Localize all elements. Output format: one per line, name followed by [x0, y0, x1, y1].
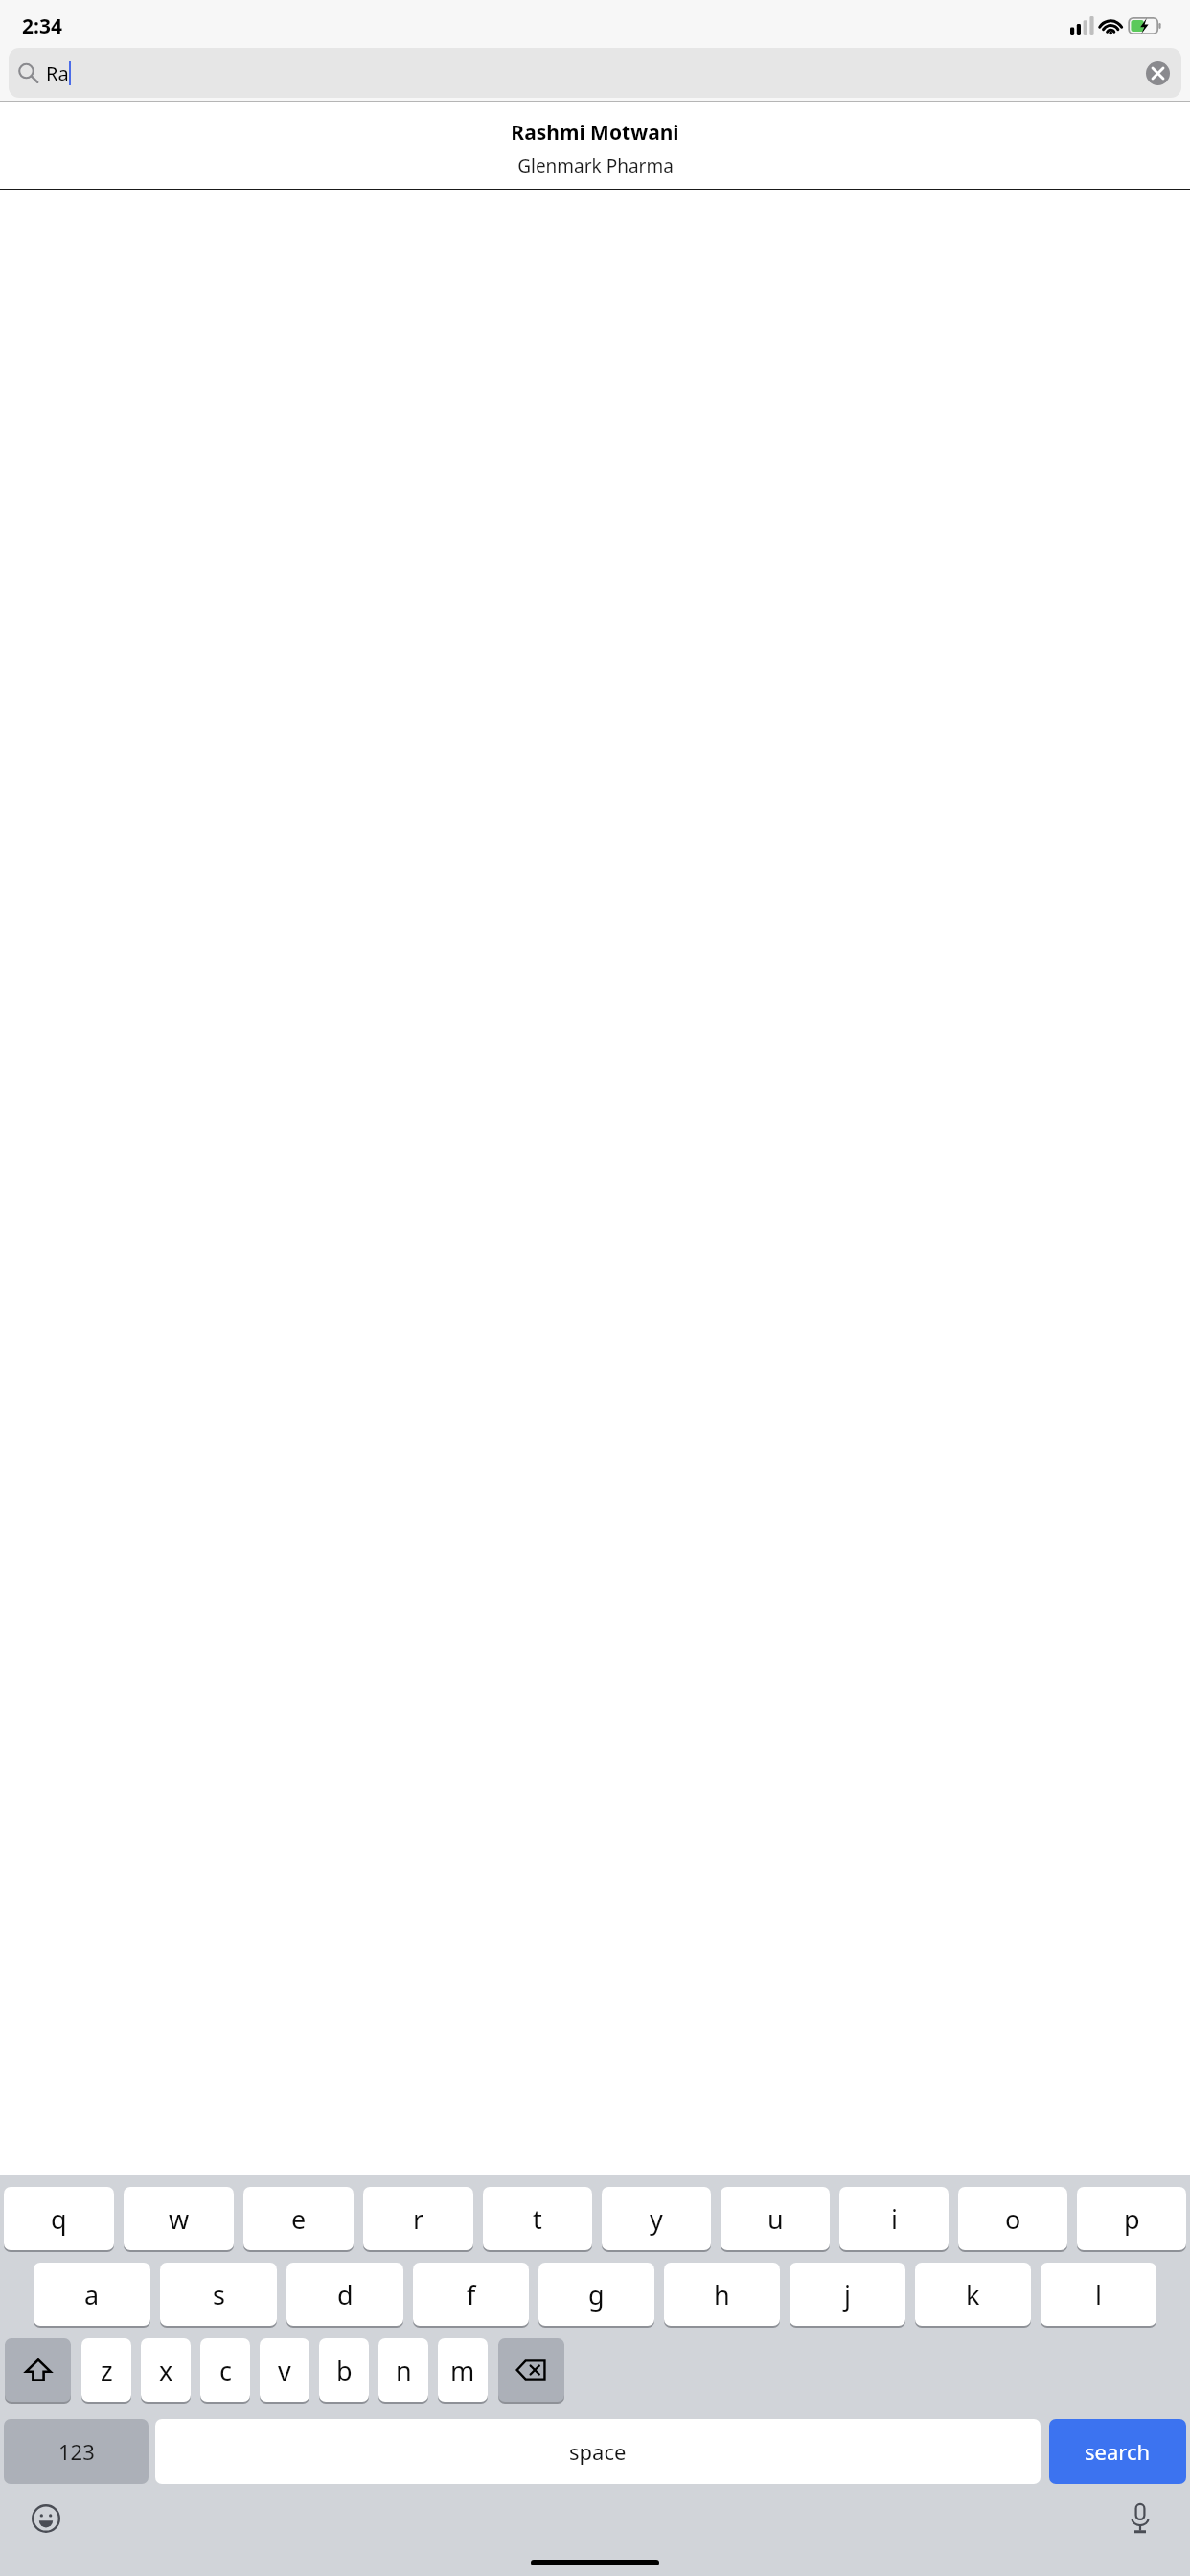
staticText: t — [533, 2201, 542, 2237]
button[interactable]: Backspace — [498, 2338, 564, 2402]
button[interactable]: v — [260, 2338, 309, 2402]
staticText: Ra — [46, 60, 69, 86]
staticText: f — [467, 2277, 476, 2312]
staticText: z — [101, 2353, 113, 2388]
button[interactable]: Ra — [9, 48, 1181, 98]
staticText: j — [844, 2277, 851, 2312]
button[interactable]: l — [1041, 2263, 1156, 2326]
staticText: k — [966, 2277, 980, 2312]
button[interactable]: Clear search — [1136, 52, 1179, 94]
button[interactable]: Shift — [5, 2338, 71, 2402]
button[interactable]: t — [483, 2187, 592, 2250]
button[interactable]: i — [839, 2187, 949, 2250]
button[interactable]: b — [319, 2338, 369, 2402]
button[interactable]: g — [538, 2263, 654, 2326]
button[interactable]: p — [1077, 2187, 1186, 2250]
button[interactable]: n — [378, 2338, 428, 2402]
staticText: Rashmi Motwani — [511, 119, 679, 147]
staticText: q — [51, 2201, 67, 2237]
button[interactable]: u — [721, 2187, 830, 2250]
staticText: search — [1085, 2437, 1151, 2466]
staticText: y — [650, 2201, 663, 2237]
button[interactable]: search — [1049, 2419, 1186, 2484]
staticText: p — [1124, 2201, 1140, 2237]
button[interactable]: z — [81, 2338, 131, 2402]
button[interactable]: m — [438, 2338, 488, 2402]
button[interactable]: s — [160, 2263, 277, 2326]
staticText: x — [159, 2353, 173, 2388]
button[interactable]: x — [141, 2338, 191, 2402]
staticText: u — [767, 2201, 784, 2237]
button[interactable]: e — [243, 2187, 354, 2250]
button[interactable]: r — [363, 2187, 473, 2250]
button[interactable]: d — [286, 2263, 403, 2326]
button[interactable]: y — [602, 2187, 711, 2250]
button[interactable]: c — [200, 2338, 250, 2402]
button[interactable]: Rashmi Motwani — [0, 102, 1190, 189]
staticText: v — [278, 2353, 291, 2388]
staticText: 2:34 — [22, 12, 62, 40]
staticText: a — [84, 2277, 100, 2312]
staticText: e — [291, 2201, 307, 2237]
button[interactable]: h — [664, 2263, 780, 2326]
button[interactable]: k — [915, 2263, 1031, 2326]
button[interactable]: Emoji keyboard — [21, 2494, 71, 2543]
staticText: g — [588, 2277, 605, 2312]
button[interactable]: a — [34, 2263, 150, 2326]
staticText: i — [891, 2201, 898, 2237]
staticText: c — [219, 2353, 232, 2388]
button[interactable]: o — [958, 2187, 1067, 2250]
staticText: 123 — [58, 2437, 95, 2466]
staticText: l — [1095, 2277, 1102, 2312]
staticText: b — [336, 2353, 353, 2388]
staticText: w — [169, 2201, 190, 2237]
staticText: n — [396, 2353, 412, 2388]
staticText: s — [213, 2277, 225, 2312]
button[interactable]: w — [124, 2187, 234, 2250]
button[interactable]: 123 — [4, 2419, 149, 2484]
staticText: m — [450, 2353, 475, 2388]
staticText: Glenmark Pharma — [517, 153, 674, 178]
staticText: r — [413, 2201, 424, 2237]
staticText: h — [714, 2277, 730, 2312]
button[interactable]: j — [790, 2263, 905, 2326]
button[interactable]: Dictation — [1115, 2494, 1165, 2543]
staticText: space — [569, 2437, 627, 2466]
staticText: o — [1005, 2201, 1021, 2237]
button[interactable]: f — [413, 2263, 529, 2326]
button[interactable]: q — [4, 2187, 114, 2250]
button[interactable]: space — [155, 2419, 1041, 2484]
staticText: d — [337, 2277, 354, 2312]
